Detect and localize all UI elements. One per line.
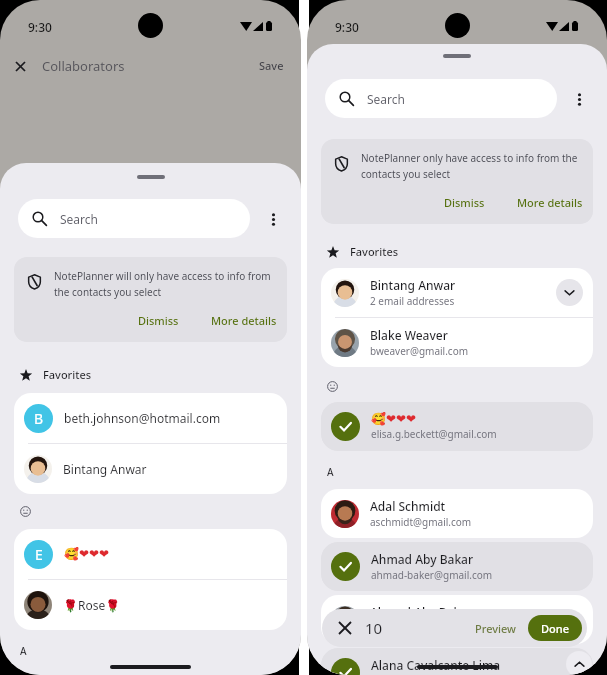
- staticText: bweaver@gmail.com: [370, 344, 469, 358]
- button[interactable]: 🌹Rose🌹: [14, 580, 287, 630]
- staticText: A: [327, 465, 334, 479]
- button[interactable]: Scroll to top: [566, 651, 592, 675]
- button[interactable]: B: [14, 393, 287, 443]
- button[interactable]: More options: [562, 82, 596, 116]
- button[interactable]: Ahmad Aby Bakar: [321, 542, 593, 591]
- staticText: 9:30: [28, 19, 52, 35]
- staticText: Blake Weaver: [370, 327, 448, 343]
- staticText: Search: [60, 211, 98, 227]
- button[interactable]: Preview: [469, 615, 522, 642]
- staticText: A: [20, 644, 27, 658]
- staticText: beth.johnson@hotmail.com: [64, 410, 221, 426]
- button[interactable]: More options: [256, 202, 290, 236]
- staticText: 9:30: [335, 19, 359, 35]
- staticText: elisa.g.beckett@gmail.com: [371, 427, 497, 441]
- staticText: 🥰❤️❤️❤️: [371, 412, 417, 426]
- staticText: NotePlanner only have access to info fro…: [361, 151, 581, 180]
- staticText: 2 email addresses: [370, 294, 455, 308]
- staticText: ahmad@gmail.com: [370, 621, 462, 635]
- button[interactable]: Save: [242, 52, 301, 79]
- button[interactable]: Clear selection: [331, 614, 359, 642]
- staticText: Alana Cavalcante Lima: [371, 657, 501, 673]
- staticText: Collaborators: [42, 57, 125, 75]
- button[interactable]: Search: [18, 199, 250, 238]
- button[interactable]: Dismiss: [435, 190, 494, 215]
- staticText: Favorites: [350, 244, 399, 259]
- button[interactable]: Bintang Anwar: [321, 268, 593, 317]
- staticText: Dismiss: [138, 313, 179, 328]
- staticText: Ahmad Aby Bakar: [370, 604, 473, 620]
- button[interactable]: Adal Schmidt: [321, 489, 593, 538]
- staticText: Save: [259, 58, 284, 73]
- staticText: Adal Schmidt: [370, 498, 446, 514]
- staticText: More details: [211, 313, 277, 328]
- button[interactable]: 🥰❤️❤️❤️: [321, 402, 593, 451]
- button[interactable]: E: [14, 529, 287, 579]
- staticText: More details: [517, 195, 583, 210]
- staticText: Bintang Anwar: [370, 277, 456, 293]
- button[interactable]: Blake Weaver: [321, 318, 593, 367]
- staticText: E: [35, 545, 43, 564]
- button[interactable]: Expand: [556, 279, 583, 306]
- staticText: Bintang Anwar: [63, 461, 147, 477]
- staticText: Search: [367, 91, 405, 107]
- button[interactable]: Ahmad Aby Bakar: [321, 595, 593, 644]
- button[interactable]: More details: [202, 308, 286, 333]
- staticText: Ahmad Aby Bakar: [371, 551, 474, 567]
- button[interactable]: More details: [508, 190, 592, 215]
- staticText: aschmidt@gmail.com: [370, 515, 472, 529]
- staticText: NotePlanner will only have access to inf…: [54, 269, 275, 298]
- staticText: B: [34, 409, 44, 428]
- button[interactable]: Close: [6, 52, 34, 80]
- button[interactable]: Done: [528, 615, 582, 641]
- button[interactable]: Dismiss: [129, 308, 188, 333]
- button[interactable]: Search: [325, 79, 557, 118]
- button[interactable]: Bintang Anwar: [14, 444, 287, 494]
- staticText: 10: [365, 618, 383, 638]
- staticText: 🌹Rose🌹: [63, 597, 121, 613]
- staticText: Preview: [475, 621, 516, 636]
- staticText: Done: [541, 621, 569, 636]
- staticText: 🥰❤️❤️❤️: [64, 547, 110, 561]
- staticText: Dismiss: [444, 195, 485, 210]
- button[interactable]: Alana Cavalcante Lima: [321, 648, 593, 675]
- staticText: ahmad-baker@gmail.com: [371, 568, 493, 582]
- staticText: Favorites: [43, 367, 92, 382]
